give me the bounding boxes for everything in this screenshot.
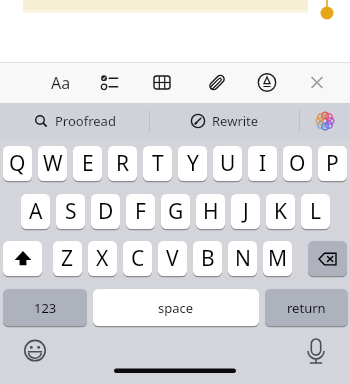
- button[interactable]: U: [213, 146, 242, 181]
- staticText: D: [98, 197, 114, 226]
- staticText: W: [43, 149, 63, 178]
- button[interactable]: [308, 241, 347, 276]
- button[interactable]: M: [263, 241, 292, 276]
- button[interactable]: Y: [178, 146, 207, 181]
- staticText: R: [116, 149, 130, 178]
- button[interactable]: [245, 62, 289, 103]
- button[interactable]: I: [248, 146, 277, 181]
- button[interactable]: D: [91, 194, 120, 229]
- button[interactable]: T: [143, 146, 172, 181]
- button[interactable]: N: [228, 241, 257, 276]
- staticText: B: [201, 244, 215, 273]
- button[interactable]: O: [283, 146, 312, 181]
- staticText: T: [152, 149, 164, 178]
- button[interactable]: [195, 62, 239, 103]
- button[interactable]: R: [108, 146, 137, 181]
- staticText: X: [96, 244, 109, 273]
- staticText: J: [243, 197, 249, 226]
- staticText: I: [259, 149, 267, 178]
- button[interactable]: [300, 103, 350, 138]
- button[interactable]: C: [123, 241, 152, 276]
- button[interactable]: L: [301, 194, 330, 229]
- button[interactable]: Q: [3, 146, 32, 181]
- staticText: Aa: [51, 72, 71, 94]
- staticText: M: [268, 244, 288, 273]
- button[interactable]: G: [161, 194, 190, 229]
- button[interactable]: Proofread: [0, 103, 149, 138]
- button[interactable]: K: [266, 194, 295, 229]
- staticText: Q: [9, 149, 26, 178]
- staticText: O: [289, 149, 306, 178]
- staticText: space: [158, 299, 194, 317]
- staticText: return: [287, 299, 326, 317]
- staticText: P: [326, 149, 339, 178]
- staticText: A: [29, 197, 43, 226]
- staticText: F: [135, 197, 146, 226]
- staticText: Y: [187, 149, 199, 178]
- staticText: V: [166, 244, 179, 273]
- button[interactable]: X: [88, 241, 117, 276]
- button[interactable]: P: [318, 146, 347, 181]
- staticText: H: [203, 197, 219, 226]
- button[interactable]: [295, 62, 339, 103]
- button[interactable]: S: [56, 194, 85, 229]
- staticText: C: [131, 244, 145, 273]
- staticText: Z: [61, 244, 74, 273]
- button[interactable]: A: [21, 194, 50, 229]
- button[interactable]: B: [193, 241, 222, 276]
- button[interactable]: V: [158, 241, 187, 276]
- button[interactable]: [140, 62, 184, 103]
- button[interactable]: Aa: [39, 62, 83, 103]
- button[interactable]: [294, 338, 338, 382]
- button[interactable]: H: [196, 194, 225, 229]
- button[interactable]: space: [93, 289, 259, 326]
- button[interactable]: 123: [3, 289, 87, 326]
- staticText: K: [274, 197, 287, 226]
- button[interactable]: Z: [53, 241, 82, 276]
- staticText: U: [220, 149, 236, 178]
- staticText: S: [65, 197, 77, 226]
- staticText: 123: [34, 299, 57, 317]
- staticText: G: [168, 197, 184, 226]
- button[interactable]: F: [126, 194, 155, 229]
- button[interactable]: [88, 62, 132, 103]
- button[interactable]: Rewrite: [150, 103, 299, 138]
- button[interactable]: [13, 338, 57, 382]
- staticText: L: [310, 197, 322, 226]
- staticText: Proofread: [55, 112, 116, 130]
- staticText: N: [235, 244, 251, 273]
- button[interactable]: [3, 241, 42, 276]
- staticText: Rewrite: [212, 112, 259, 130]
- staticText: E: [82, 149, 94, 178]
- button[interactable]: W: [38, 146, 67, 181]
- button[interactable]: return: [265, 289, 348, 326]
- button[interactable]: E: [73, 146, 102, 181]
- button[interactable]: J: [231, 194, 260, 229]
